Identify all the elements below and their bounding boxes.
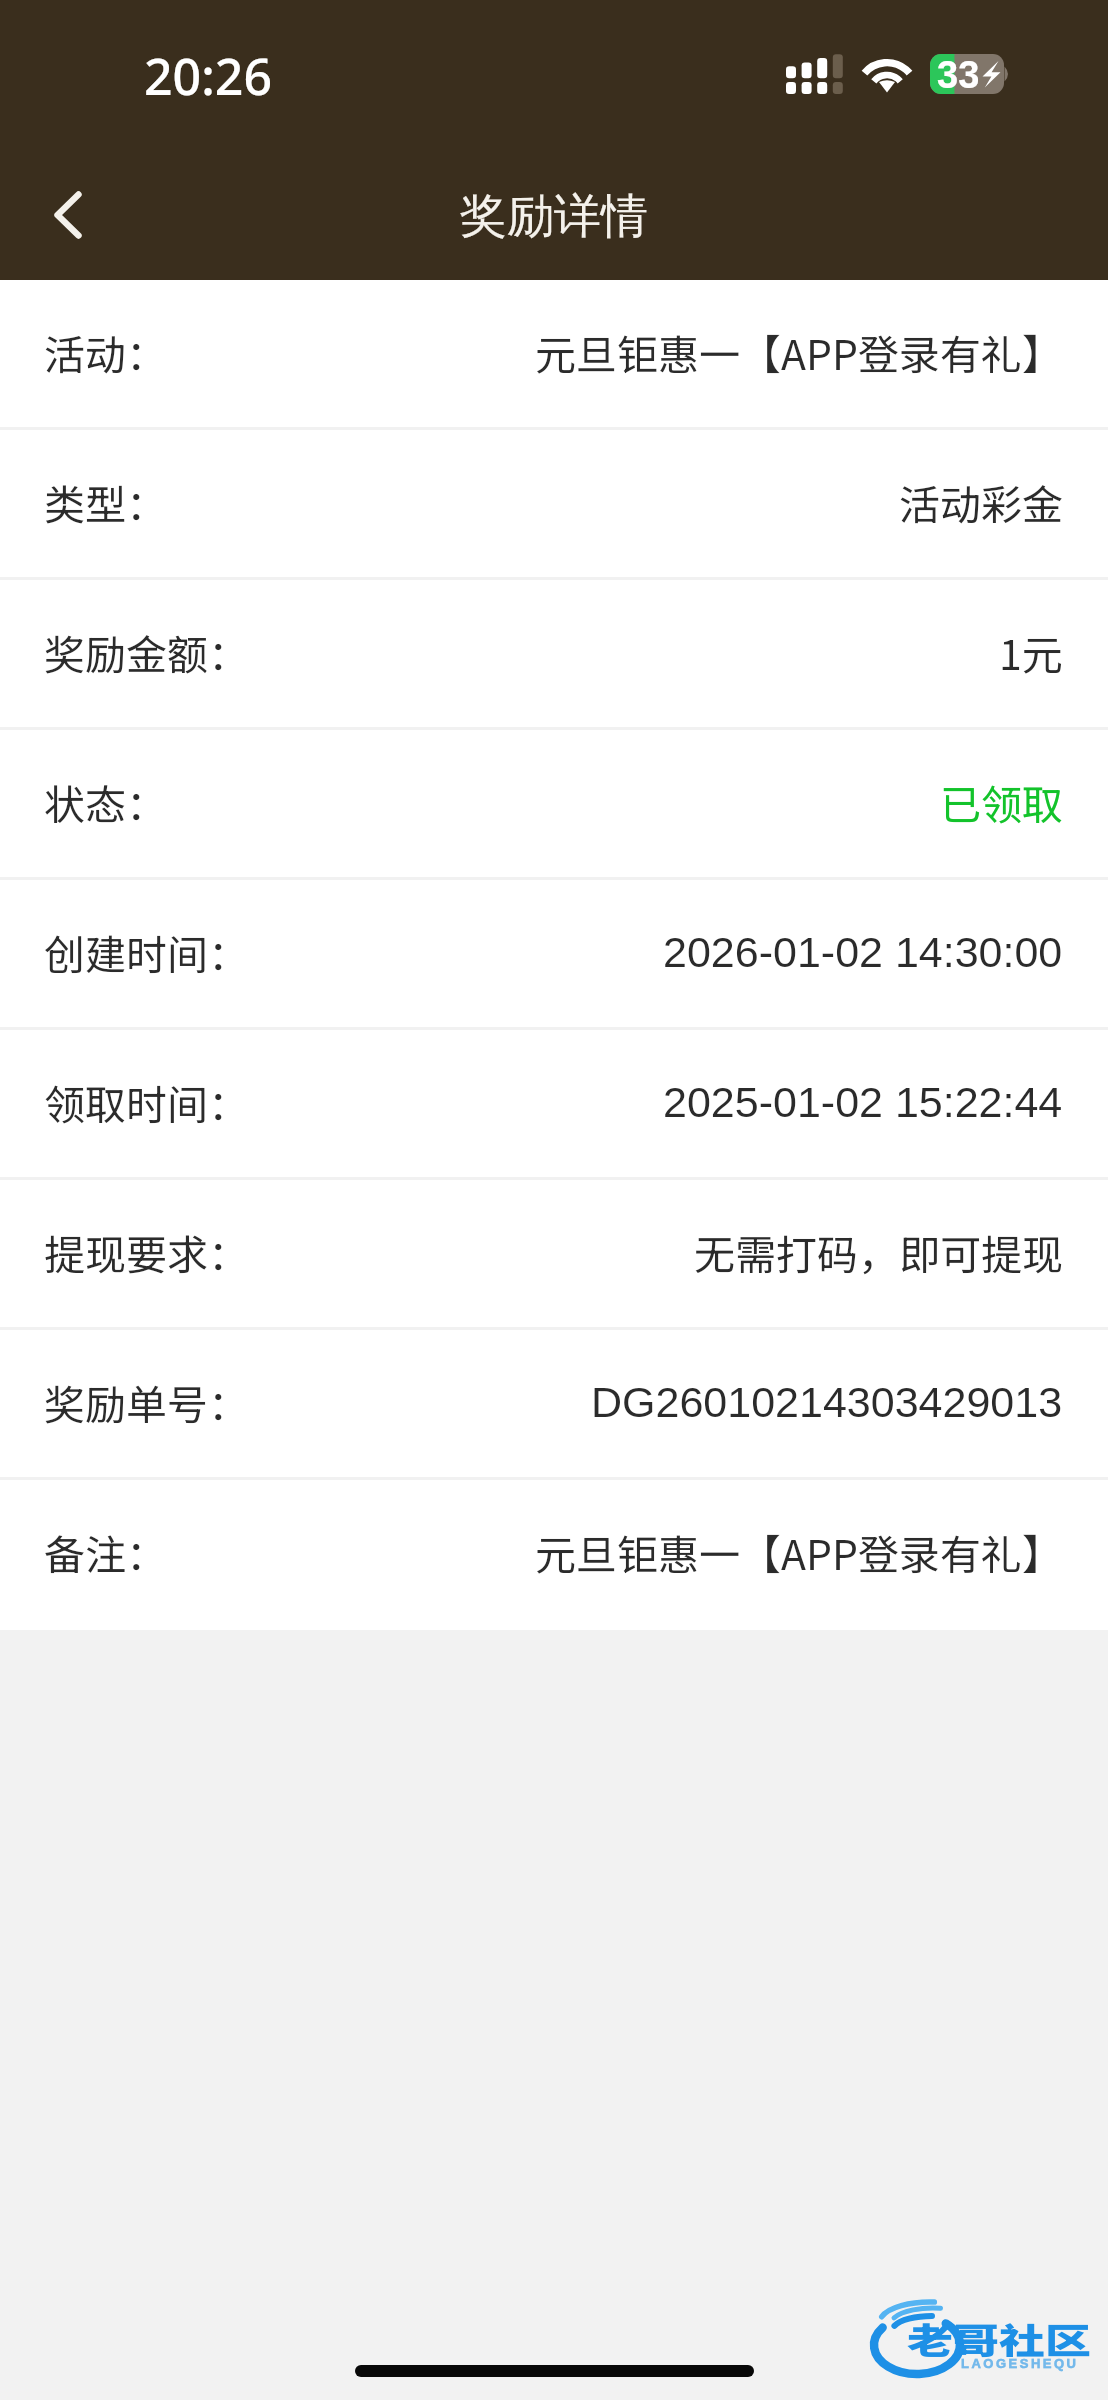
staticText: 2026-01-02 14:30:00	[663, 928, 1063, 976]
staticText: 2025-01-02 15:22:44	[663, 1078, 1063, 1126]
button[interactable]: Back	[12, 160, 122, 270]
staticText: 33	[937, 54, 980, 96]
staticText: 1元	[999, 622, 1063, 681]
staticText: 领取时间：	[44, 1072, 249, 1131]
staticText: 奖励详情	[460, 187, 648, 246]
staticText: 创建时间：	[44, 922, 249, 981]
button[interactable]: 领取时间：	[0, 1030, 1108, 1180]
staticText: 无需打码，即可提现	[694, 1222, 1063, 1281]
staticText: 元旦钜惠一【APP登录有礼】	[535, 1522, 1063, 1581]
button[interactable]: 奖励单号：	[0, 1330, 1108, 1480]
staticText: 类型：	[44, 472, 167, 531]
staticText: DG26010214303429013	[591, 1378, 1063, 1426]
staticText: 状态：	[44, 772, 167, 831]
staticText: 20:26	[144, 42, 272, 110]
staticText: 活动：	[44, 322, 167, 381]
staticText: 备注：	[44, 1522, 167, 1581]
staticText: LAOGESHEQU	[961, 2356, 1079, 2371]
button[interactable]: 状态：	[0, 730, 1108, 880]
button[interactable]: 提现要求：	[0, 1180, 1108, 1330]
button[interactable]: 创建时间：	[0, 880, 1108, 1030]
staticText: 奖励单号：	[44, 1372, 249, 1431]
staticText: 奖励金额：	[44, 622, 249, 681]
button[interactable]: 类型：	[0, 430, 1108, 580]
button[interactable]: 奖励金额：	[0, 580, 1108, 730]
staticText: 元旦钜惠一【APP登录有礼】	[535, 322, 1063, 381]
button[interactable]: 活动：	[0, 280, 1108, 430]
staticText: 提现要求：	[44, 1222, 249, 1281]
button[interactable]: 备注：	[0, 1480, 1108, 1630]
staticText: 活动彩金	[899, 472, 1063, 531]
staticText: 老哥社区	[907, 2313, 1091, 2365]
staticText: 已领取	[940, 772, 1063, 831]
